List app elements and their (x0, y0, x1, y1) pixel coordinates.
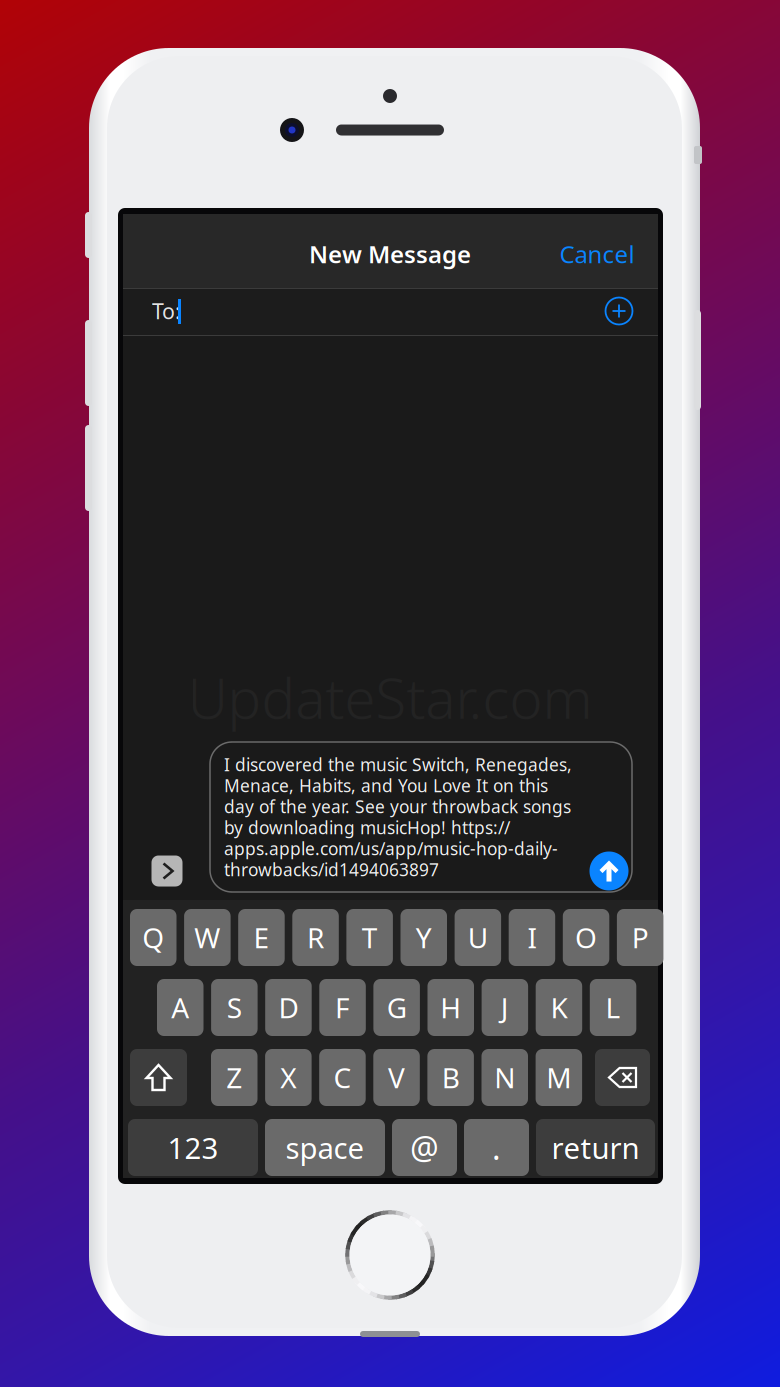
staticText: A (171, 989, 189, 1026)
button[interactable]: Z (211, 1049, 257, 1106)
staticText: V (388, 1059, 405, 1096)
button[interactable]: P (617, 909, 663, 966)
staticText: S (227, 989, 242, 1026)
staticText: B (442, 1059, 460, 1096)
staticText: M (546, 1059, 571, 1096)
staticText: N (494, 1059, 515, 1096)
staticText: . (492, 1126, 501, 1169)
button[interactable]: Q (130, 909, 176, 966)
staticText: New Message (309, 238, 471, 270)
button[interactable]: S (211, 979, 258, 1036)
staticText: return (551, 1128, 639, 1167)
button[interactable]: Cancel (547, 228, 646, 280)
staticText: Y (416, 919, 432, 956)
staticText: Cancel (559, 238, 634, 270)
button[interactable]: X (265, 1049, 312, 1106)
button[interactable]: K (536, 979, 582, 1036)
staticText: C (333, 1059, 351, 1096)
staticText: by downloading musicHop! https:// (224, 816, 510, 839)
button[interactable]: . (464, 1119, 529, 1176)
button[interactable]: N (481, 1049, 528, 1106)
button[interactable]: C (319, 1049, 366, 1106)
button[interactable]: O (563, 909, 609, 966)
staticText: 123 (167, 1128, 218, 1167)
button[interactable]: E (238, 909, 285, 966)
button[interactable]: G (373, 979, 420, 1036)
button[interactable]: V (373, 1049, 420, 1106)
button[interactable]: U (455, 909, 501, 966)
staticText: I (527, 919, 536, 956)
button[interactable]: space (265, 1119, 385, 1176)
staticText: Z (226, 1059, 242, 1096)
staticText: throwbacks/id1494063897 (224, 858, 439, 881)
staticText: Q (142, 919, 164, 956)
staticText: X (280, 1059, 296, 1096)
button[interactable]: Send (589, 851, 628, 890)
button[interactable]: D (265, 979, 312, 1036)
button[interactable]: A (157, 979, 203, 1036)
staticText: I discovered the music Switch, Renegades… (224, 753, 572, 776)
staticText: R (307, 919, 324, 956)
staticText: H (440, 989, 461, 1026)
staticText: J (501, 989, 509, 1026)
button[interactable]: Home (344, 1209, 436, 1301)
staticText: space (285, 1128, 364, 1167)
button[interactable]: F (319, 979, 366, 1036)
button[interactable]: @ (392, 1119, 457, 1176)
staticText: E (253, 919, 269, 956)
button[interactable]: I (509, 909, 555, 966)
staticText: @ (410, 1126, 439, 1169)
button[interactable]: return (536, 1119, 655, 1176)
staticText: D (278, 989, 298, 1026)
button[interactable]: R (292, 909, 339, 966)
button[interactable]: Apps (151, 855, 182, 886)
staticText: O (575, 919, 597, 956)
button[interactable]: J (482, 979, 528, 1036)
button[interactable]: L (590, 979, 636, 1036)
staticText: G (387, 989, 407, 1026)
button[interactable]: H (427, 979, 474, 1036)
button[interactable]: Delete (595, 1049, 650, 1106)
button[interactable]: M (536, 1049, 582, 1106)
staticText: F (335, 989, 350, 1026)
staticText: apps.apple.com/us/app/music-hop-daily- (224, 837, 558, 860)
button[interactable]: B (427, 1049, 474, 1106)
staticText: K (550, 989, 567, 1026)
staticText: day of the year. See your throwback song… (224, 795, 571, 818)
button[interactable]: Shift (130, 1049, 187, 1106)
button[interactable]: Y (400, 909, 447, 966)
button[interactable]: T (346, 909, 393, 966)
staticText: U (468, 919, 488, 956)
staticText: Menace, Habits, and You Love It on this (224, 774, 548, 797)
button[interactable]: 123 (128, 1119, 258, 1176)
staticText: L (605, 989, 620, 1026)
staticText: T (362, 919, 378, 956)
staticText: To: (152, 297, 181, 325)
button[interactable]: Add contact (605, 297, 632, 324)
button[interactable]: W (184, 909, 231, 966)
staticText: W (194, 919, 220, 956)
staticText: P (632, 919, 649, 956)
